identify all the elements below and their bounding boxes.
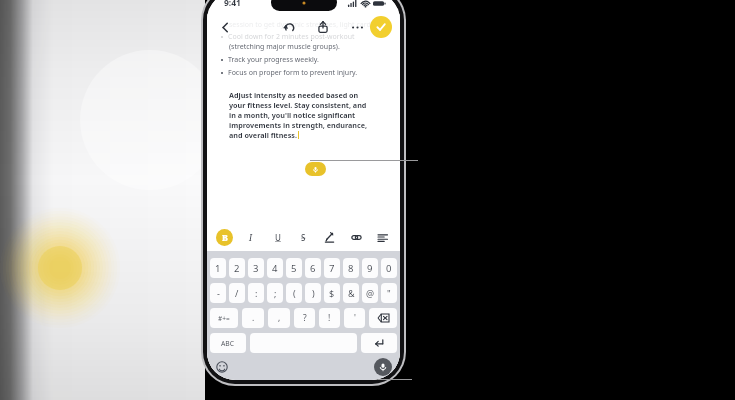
button[interactable]: /: [229, 283, 245, 303]
button[interactable]: ?: [294, 308, 315, 328]
staticText: I: [249, 232, 253, 243]
button[interactable]: Italic: [242, 229, 259, 246]
button[interactable]: $: [324, 283, 340, 303]
staticText: ?: [303, 312, 307, 324]
staticText: 1: [215, 262, 221, 275]
staticText: and overall fitness.: [229, 130, 297, 140]
button[interactable]: 6: [305, 258, 321, 278]
staticText: 3: [253, 262, 259, 275]
button[interactable]: Share: [314, 18, 332, 36]
staticText: Adjust intensity as needed based on: [229, 90, 359, 100]
staticText: your fitness level. Stay consistent, and: [229, 100, 367, 110]
staticText: 5: [291, 262, 297, 275]
staticText: U: [275, 232, 281, 243]
button[interactable]: 7: [324, 258, 340, 278]
button[interactable]: Return: [361, 333, 397, 353]
button[interactable]: Back: [216, 18, 234, 36]
staticText: session to get dynamic stretches, light …: [229, 20, 381, 30]
staticText: @: [366, 287, 375, 299]
staticText: ,: [278, 312, 281, 324]
staticText: !: [328, 312, 331, 324]
staticText: .: [252, 312, 255, 324]
staticText: -: [217, 287, 220, 299]
button[interactable]: Highlight: [321, 229, 338, 246]
button[interactable]: Delete: [369, 308, 397, 328]
button[interactable]: 2: [229, 258, 245, 278]
staticText: (stretching major muscle groups).: [229, 42, 340, 52]
button[interactable]: Undo: [280, 18, 298, 36]
button[interactable]: List format: [374, 229, 391, 246]
button[interactable]: -: [210, 283, 226, 303]
staticText: 2: [234, 262, 240, 275]
staticText: in a month, you'll notice significant: [229, 110, 356, 120]
staticText: :: [255, 287, 258, 299]
button[interactable]: ;: [267, 283, 283, 303]
button[interactable]: ': [344, 308, 365, 328]
staticText: 7: [329, 262, 335, 275]
button[interactable]: More options: [348, 18, 366, 36]
staticText: 8: [348, 262, 354, 275]
button[interactable]: &: [343, 283, 359, 303]
button[interactable]: 5: [286, 258, 302, 278]
staticText: &: [348, 287, 355, 299]
button[interactable]: 8: [343, 258, 359, 278]
button[interactable]: !: [319, 308, 340, 328]
staticText: 6: [310, 262, 316, 275]
staticText: ): [312, 287, 315, 299]
staticText: S: [301, 232, 306, 243]
button[interactable]: :: [248, 283, 264, 303]
staticText: ": [387, 287, 391, 299]
button[interactable]: 1: [210, 258, 226, 278]
staticText: /: [235, 287, 239, 299]
button[interactable]: (: [286, 283, 302, 303]
staticText: Track your progress weekly.: [228, 55, 319, 65]
button[interactable]: ,: [268, 308, 290, 328]
staticText: Focus on proper form to prevent injury.: [228, 68, 358, 78]
staticText: ': [354, 312, 356, 324]
button[interactable]: Emoji: [215, 360, 229, 374]
button[interactable]: Done: [370, 16, 392, 38]
button[interactable]: ): [305, 283, 321, 303]
button[interactable]: Underline: [269, 229, 286, 246]
staticText: 9: [367, 262, 373, 275]
staticText: #+=: [218, 314, 230, 323]
button[interactable]: 4: [267, 258, 283, 278]
button[interactable]: ": [381, 283, 397, 303]
button[interactable]: Strikethrough: [295, 229, 312, 246]
staticText: 4: [272, 262, 278, 275]
button[interactable]: ABC: [210, 333, 246, 353]
staticText: ;: [274, 287, 277, 299]
staticText: improvements in strength, endurance,: [229, 120, 368, 130]
button[interactable]: Insert link: [348, 229, 365, 246]
staticText: ABC: [221, 339, 235, 348]
staticText: 9:41: [224, 0, 241, 9]
button[interactable]: 0: [381, 258, 397, 278]
button[interactable]: Dictate: [305, 162, 326, 176]
staticText: Cool down for 2 minutes post-workout: [228, 32, 355, 42]
button[interactable]: 3: [248, 258, 264, 278]
staticText: (: [293, 287, 296, 299]
staticText: $: [329, 287, 335, 299]
button[interactable]: .: [242, 308, 264, 328]
staticText: B: [222, 232, 228, 243]
button[interactable]: Dictation: [374, 358, 392, 376]
button[interactable]: @: [362, 283, 378, 303]
staticText: 0: [386, 262, 392, 275]
button[interactable]: 9: [362, 258, 378, 278]
button[interactable]: Bold: [216, 229, 233, 246]
button[interactable]: #+=: [210, 308, 238, 328]
